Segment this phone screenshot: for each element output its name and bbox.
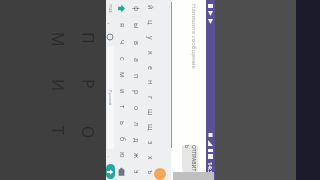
staticText: ОТПРАВИТЬ: [183, 145, 197, 172]
staticText: т: [117, 105, 127, 109]
staticText: ш: [145, 109, 155, 116]
button[interactable]: в: [129, 34, 143, 51]
button[interactable]: Backspace: [115, 163, 129, 180]
staticText: Р: [77, 79, 99, 89]
button[interactable]: Shift: [115, 0, 129, 17]
button[interactable]: з: [143, 135, 157, 150]
staticText: а: [131, 58, 141, 62]
staticText: ю: [117, 152, 127, 158]
staticText: П: [77, 32, 99, 44]
button[interactable]: т: [115, 99, 129, 115]
staticText: р: [131, 90, 141, 95]
button[interactable]: Period: [106, 151, 115, 162]
staticText: О: [77, 126, 99, 139]
staticText: ф: [131, 6, 141, 12]
button[interactable]: ш: [143, 105, 157, 120]
staticText: и: [117, 89, 127, 94]
button[interactable]: р: [129, 84, 143, 100]
staticText: Напишите сообщение: [190, 4, 198, 69]
button[interactable]: и: [115, 83, 129, 99]
staticText: е: [145, 66, 155, 70]
staticText: ъ: [145, 170, 155, 175]
button[interactable]: ъ: [143, 165, 157, 180]
button[interactable]: ж: [129, 148, 143, 164]
button[interactable]: е: [143, 60, 157, 75]
staticText: ь: [117, 121, 127, 125]
button[interactable]: Send: [106, 162, 115, 180]
button[interactable]: ?123: [106, 0, 115, 17]
button[interactable]: щ: [143, 120, 157, 135]
button[interactable]: м: [115, 67, 129, 83]
staticText: Т: [47, 126, 69, 135]
button[interactable]: Switch language: [106, 30, 115, 44]
button[interactable]: ь: [115, 115, 129, 131]
staticText: М: [47, 32, 69, 47]
staticText: й: [145, 5, 155, 10]
staticText: ?123: [108, 4, 113, 13]
staticText: к: [145, 51, 155, 55]
staticText: ж: [131, 153, 141, 159]
staticText: .: [106, 156, 114, 158]
button[interactable]: ОТПРАВИТЬ: [182, 145, 198, 172]
button[interactable]: ф: [129, 0, 143, 17]
button[interactable]: я: [115, 17, 129, 34]
button[interactable]: ц: [143, 15, 157, 30]
button[interactable]: Comma: [106, 17, 115, 30]
staticText: э: [131, 170, 141, 174]
staticText: м: [117, 72, 127, 78]
button[interactable]: б: [115, 131, 129, 147]
button[interactable]: ы: [129, 17, 143, 34]
staticText: п: [131, 74, 141, 79]
staticText: ч: [117, 40, 127, 45]
staticText: я: [117, 23, 127, 28]
button[interactable]: с: [115, 51, 129, 67]
button[interactable]: й: [143, 0, 157, 15]
staticText: ,: [106, 23, 114, 25]
staticText: б: [117, 137, 127, 142]
staticText: л: [131, 122, 141, 127]
staticText: И: [47, 79, 69, 92]
button[interactable]: э: [129, 164, 143, 180]
staticText: в: [131, 41, 141, 45]
button[interactable]: н: [143, 75, 157, 90]
staticText: х: [145, 156, 155, 160]
button[interactable]: Русский: [107, 46, 114, 149]
staticText: Русский: [108, 90, 113, 106]
staticText: ы: [131, 23, 141, 29]
staticText: г: [145, 96, 155, 100]
staticText: щ: [145, 124, 155, 131]
button[interactable]: ю: [115, 147, 129, 163]
staticText: у: [145, 36, 155, 40]
button[interactable]: а: [129, 51, 143, 68]
button[interactable]: г: [143, 90, 157, 105]
staticText: с: [117, 57, 127, 61]
button[interactable]: д: [129, 132, 143, 148]
staticText: ц: [145, 20, 155, 25]
button[interactable]: о: [129, 100, 143, 116]
button[interactable]: л: [129, 116, 143, 132]
button[interactable]: у: [143, 30, 157, 45]
staticText: 14:35: [206, 162, 214, 178]
button[interactable]: п: [129, 68, 143, 84]
button[interactable]: к: [143, 45, 157, 60]
staticText: о: [131, 106, 141, 111]
staticText: д: [131, 138, 141, 143]
staticText: з: [145, 141, 155, 145]
staticText: н: [145, 80, 155, 85]
button[interactable]: х: [143, 150, 157, 165]
button[interactable]: ч: [115, 34, 129, 51]
